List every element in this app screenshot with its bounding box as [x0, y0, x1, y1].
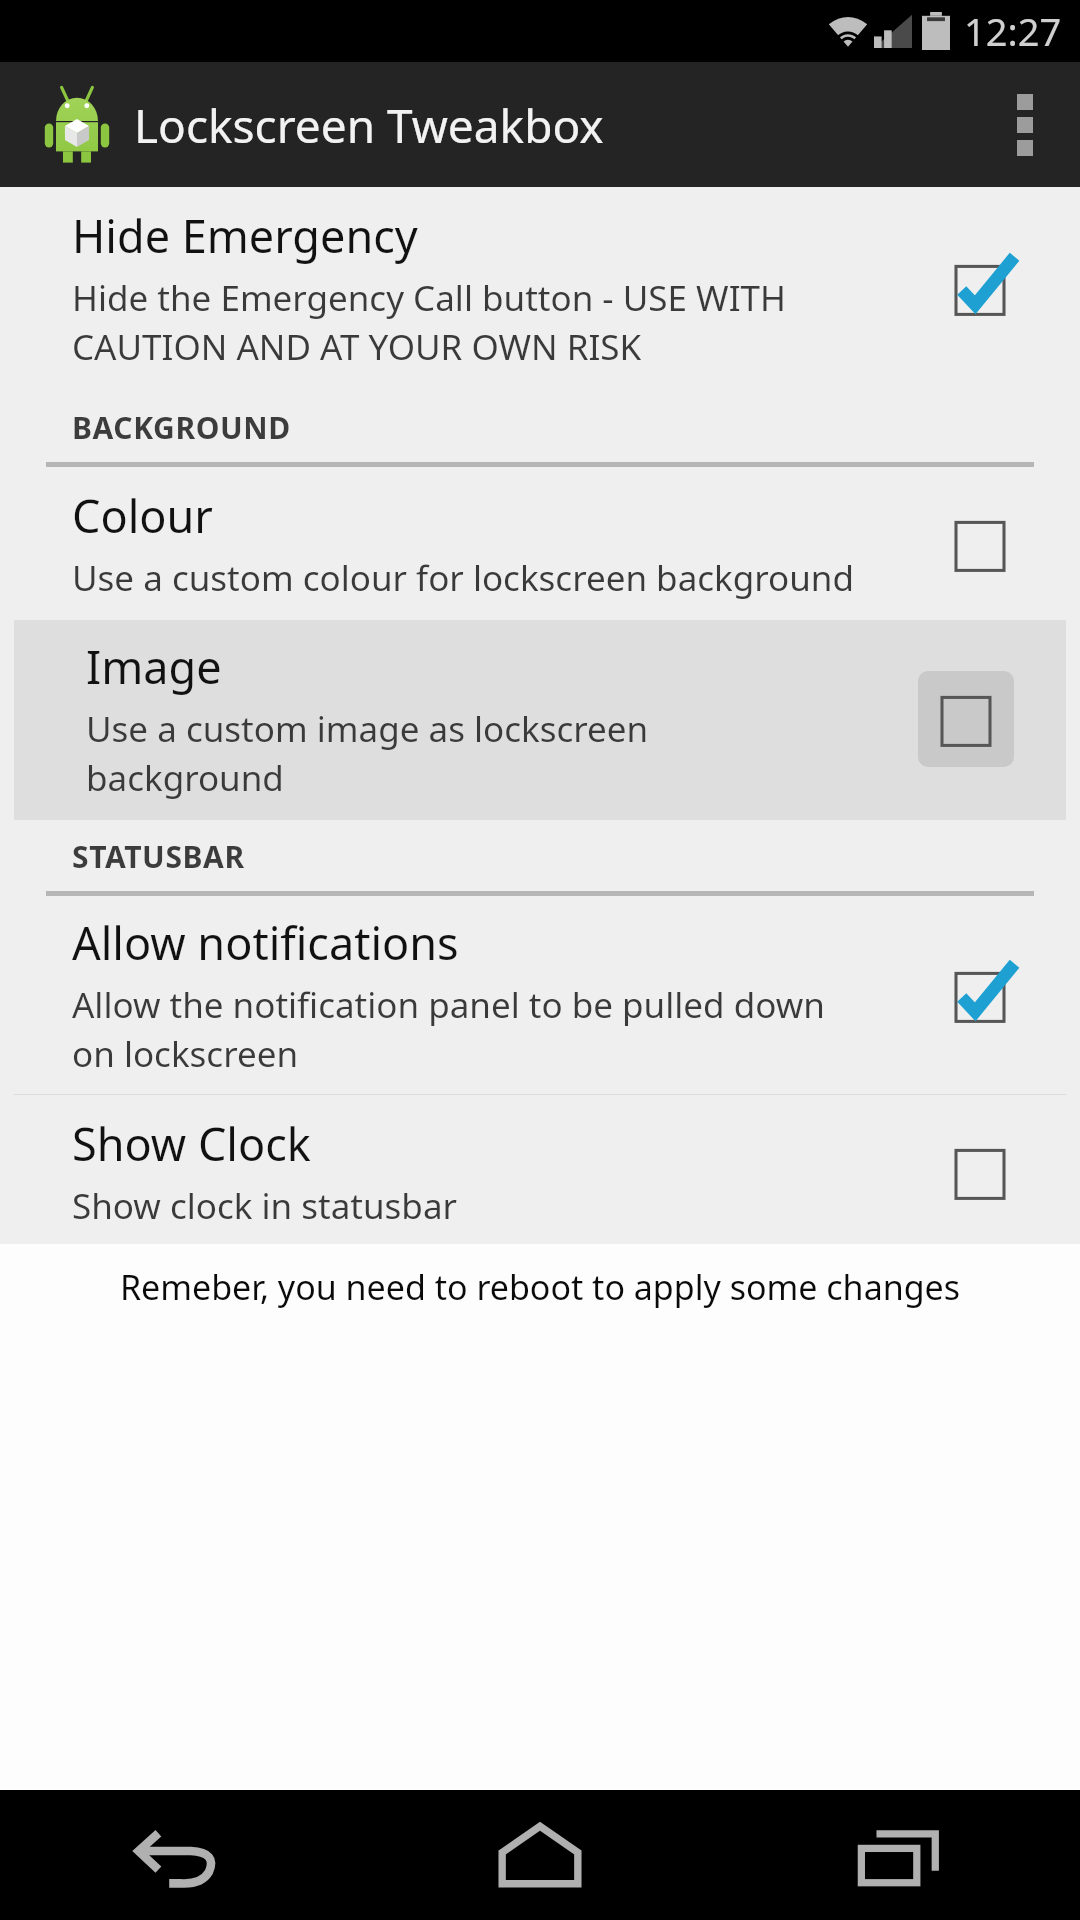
staticText: 12:27	[964, 5, 1062, 57]
staticText: STATUSBAR	[72, 836, 245, 877]
staticText: Remeber, you need to reboot to apply som…	[8, 1264, 1072, 1310]
staticText: Allow notifications	[72, 912, 459, 973]
staticText: Use a custom colour for lockscreen backg…	[72, 554, 855, 602]
button[interactable]: Allow notifications	[0, 896, 1080, 1094]
staticText: Show Clock	[72, 1113, 311, 1174]
staticText: Hide Emergency	[72, 205, 418, 266]
staticText: Hide the Emergency Call button - USE WIT…	[72, 274, 856, 371]
staticText: BACKGROUND	[72, 407, 291, 448]
button[interactable]: More options	[970, 62, 1080, 187]
button[interactable]: Hide Emergency	[0, 187, 1080, 391]
staticText: Use a custom image as lockscreen backgro…	[86, 705, 842, 802]
button[interactable]: Show Clock	[0, 1095, 1080, 1244]
button[interactable]: Colour	[0, 467, 1080, 620]
staticText: Show clock in statusbar	[72, 1182, 457, 1230]
staticText: Allow the notification panel to be pulle…	[72, 981, 856, 1078]
button[interactable]: Back	[0, 1790, 360, 1920]
button[interactable]: Home	[360, 1790, 720, 1920]
button[interactable]: Image	[14, 620, 1066, 820]
staticText: Colour	[72, 485, 213, 546]
staticText: Image	[86, 636, 222, 697]
button[interactable]: Recent apps	[720, 1790, 1080, 1920]
staticText: Lockscreen Tweakbox	[134, 94, 604, 157]
